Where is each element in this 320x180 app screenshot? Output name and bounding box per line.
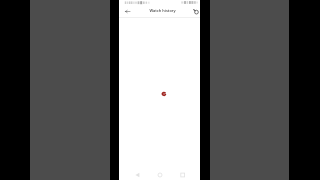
button[interactable]: Search <box>190 6 201 17</box>
button[interactable]: Recent apps <box>175 168 189 180</box>
staticText: Watch history <box>149 8 176 13</box>
button[interactable]: Back <box>122 6 133 17</box>
button[interactable]: Back <box>131 168 145 180</box>
button[interactable]: Home <box>153 168 167 180</box>
